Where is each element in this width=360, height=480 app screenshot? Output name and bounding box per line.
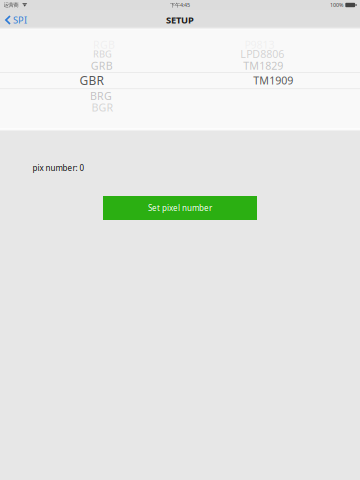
- staticText: TM1829: [243, 58, 283, 73]
- staticText: pix number: 0: [32, 163, 84, 173]
- staticText: BRG: [90, 89, 112, 103]
- staticText: RGB: [93, 37, 115, 52]
- staticText: 运营商: [4, 2, 19, 8]
- staticText: 下午4:45: [170, 1, 190, 9]
- staticText: 100%: [330, 1, 343, 9]
- staticText: LPD8806: [240, 47, 284, 61]
- staticText: RBG: [93, 48, 112, 60]
- staticText: SPI: [13, 14, 27, 26]
- button[interactable]: SPI: [0, 10, 34, 30]
- button[interactable]: Set pixel number: [103, 196, 257, 220]
- staticText: BGR: [92, 100, 114, 114]
- staticText: TM1909: [253, 73, 293, 87]
- staticText: GBR: [79, 72, 103, 88]
- staticText: Set pixel number: [148, 203, 212, 213]
- staticText: SETUP: [166, 14, 194, 26]
- staticText: P9813: [244, 37, 274, 52]
- staticText: GRB: [91, 58, 113, 73]
